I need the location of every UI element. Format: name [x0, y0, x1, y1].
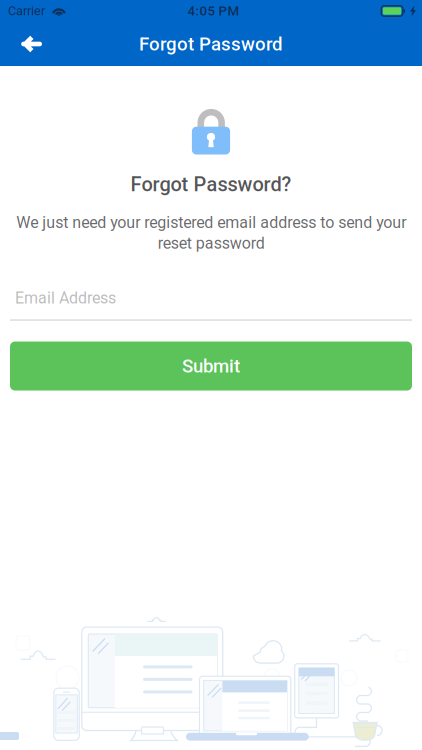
- staticText: Submit: [182, 355, 240, 377]
- staticText: Forgot Password?: [130, 173, 291, 196]
- staticText: Email Address: [15, 289, 116, 307]
- button[interactable]: Submit: [10, 341, 412, 390]
- staticText: 4:05 PM: [187, 3, 239, 19]
- staticText: Forgot Password: [139, 33, 283, 55]
- button[interactable]: Back: [0, 22, 53, 66]
- staticText: Carrier: [8, 4, 45, 18]
- staticText: We just need your registered email addre…: [16, 213, 406, 252]
